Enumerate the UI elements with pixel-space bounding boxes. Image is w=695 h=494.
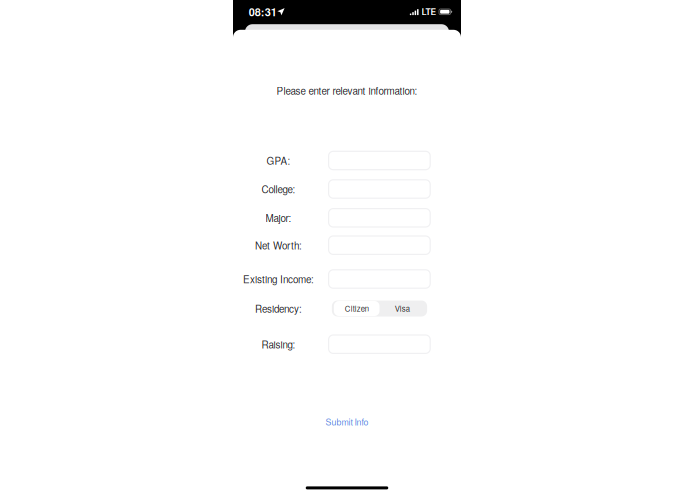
staticText: Citizen	[345, 303, 369, 314]
staticText: GPA:	[266, 153, 290, 167]
staticText: Raising:	[261, 337, 295, 351]
button[interactable]: Submit Info	[233, 411, 461, 433]
button[interactable]: Citizen	[334, 301, 379, 316]
staticText: College:	[261, 182, 295, 196]
button[interactable]: Visa	[379, 301, 425, 316]
staticText: Please enter relevant information:	[276, 83, 417, 97]
staticText: Residency:	[255, 301, 302, 315]
staticText: Major:	[265, 211, 291, 225]
button[interactable]	[329, 151, 430, 170]
staticText: Visa	[395, 303, 410, 314]
staticText: Submit Info	[325, 415, 368, 428]
staticText: Existing Income:	[243, 272, 314, 286]
staticText: Net Worth:	[255, 238, 302, 252]
staticText: LTE	[421, 6, 436, 18]
staticText: 08:31	[249, 4, 277, 20]
